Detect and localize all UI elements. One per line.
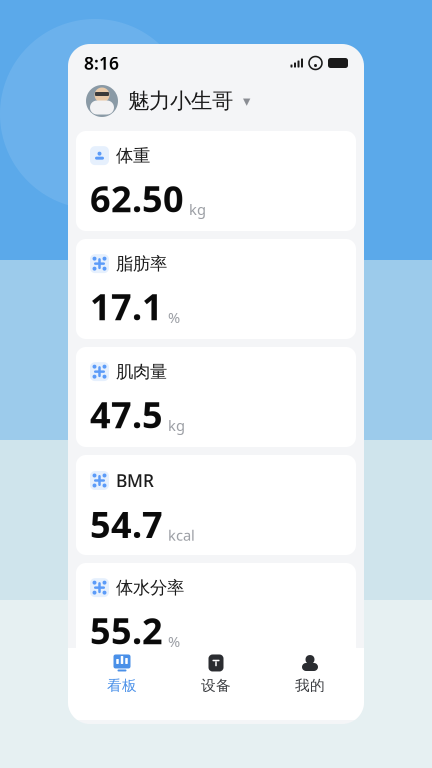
staticText: ▾ (243, 93, 250, 109)
staticText: 看板 (107, 676, 137, 694)
button[interactable]: 我的 (270, 651, 350, 697)
staticText: 设备 (201, 676, 231, 694)
staticText: 脂肪率 (116, 253, 167, 274)
staticText: % (168, 308, 180, 327)
staticText: 47.5 (90, 390, 163, 438)
staticText: kg (168, 416, 185, 435)
staticText: 55.2 (90, 606, 163, 654)
staticText: 8:16 (84, 51, 119, 74)
staticText: kcal (168, 525, 195, 545)
staticText: 魅力小生哥 (128, 88, 233, 114)
staticText: 我的 (295, 676, 325, 694)
staticText: 肌肉量 (116, 361, 167, 382)
staticText: 体重 (116, 145, 150, 166)
staticText: % (168, 632, 180, 651)
staticText: 17.1 (90, 282, 163, 330)
button[interactable]: 设备 (176, 651, 256, 697)
staticText: kg (189, 200, 206, 219)
staticText: 54.7 (90, 500, 163, 548)
staticText: 健康 (88, 129, 128, 153)
staticText: 62.50 (90, 174, 184, 222)
button[interactable]: 看板 (82, 651, 162, 697)
staticText: 体水分率 (116, 577, 184, 598)
staticText: BMR (116, 469, 154, 492)
